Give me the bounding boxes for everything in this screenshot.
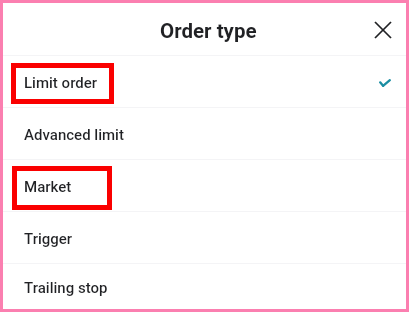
button[interactable]: Close — [353, 3, 405, 53]
button[interactable]: Trailing stop — [3, 264, 406, 309]
staticText: Market — [24, 178, 72, 196]
staticText: Trailing stop — [24, 279, 108, 297]
button[interactable]: Trigger — [3, 212, 406, 264]
staticText: Order type — [160, 19, 257, 43]
staticText: Limit order — [24, 74, 98, 92]
button[interactable]: Market — [3, 160, 406, 212]
staticText: Advanced limit — [24, 126, 124, 144]
button[interactable]: Advanced limit — [3, 108, 406, 160]
button[interactable]: Limit order — [3, 56, 406, 108]
staticText: Trigger — [24, 230, 73, 248]
